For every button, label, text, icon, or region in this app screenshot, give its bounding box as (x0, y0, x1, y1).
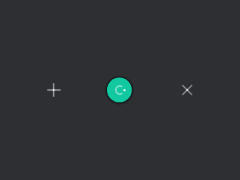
button[interactable]: Add (38, 74, 70, 106)
button[interactable]: Refresh (104, 74, 136, 106)
button[interactable]: Close (170, 74, 202, 106)
